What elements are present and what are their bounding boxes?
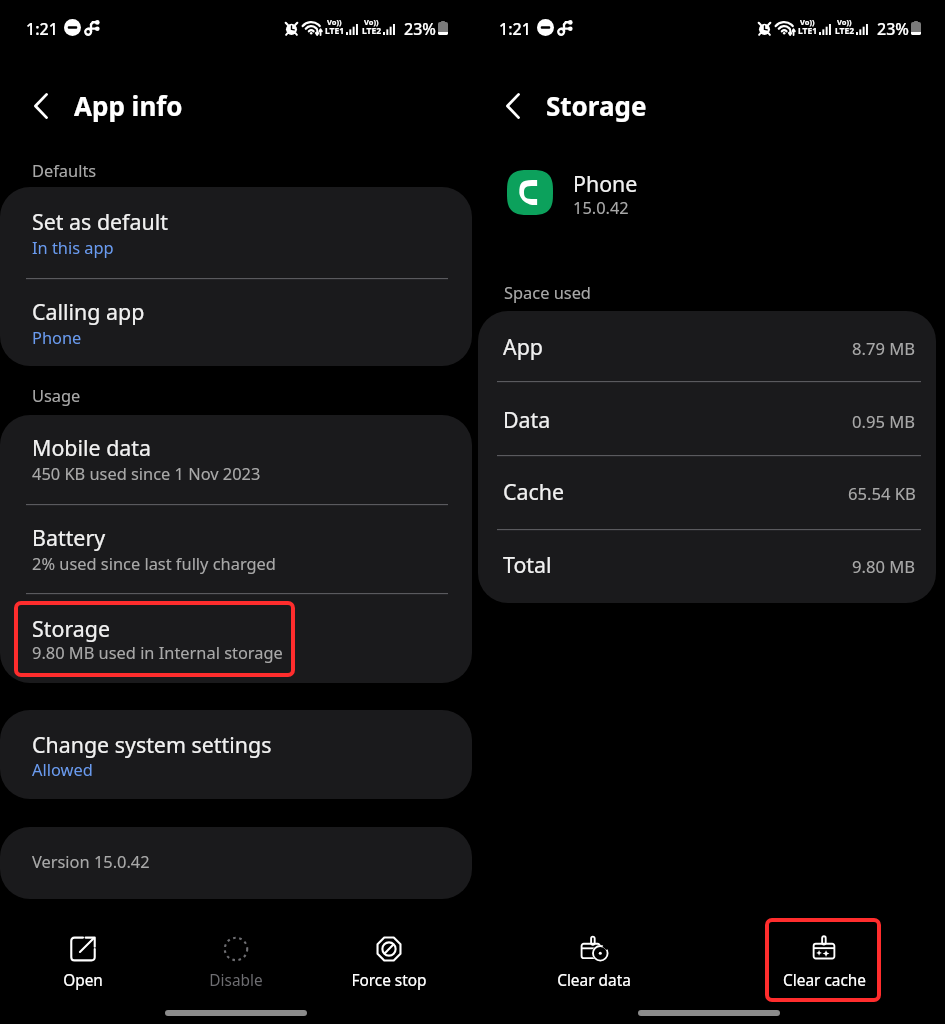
button[interactable]: Open — [8, 925, 158, 1001]
staticText: Vo)) — [364, 17, 379, 27]
button[interactable]: Navigate up — [489, 82, 537, 130]
staticText: Vo)) — [800, 17, 815, 27]
staticText: 1:21 — [26, 18, 58, 40]
button[interactable]: Battery — [0, 504, 472, 593]
button[interactable]: Change system settings — [0, 710, 472, 799]
staticText: Calling app — [32, 297, 145, 326]
staticText: Clear data — [557, 970, 631, 991]
staticText: 450 KB used since 1 Nov 2023 — [32, 462, 261, 484]
staticText: Force stop — [351, 970, 427, 991]
button[interactable]: Navigate up — [17, 82, 65, 130]
staticText: Cache — [503, 477, 565, 506]
staticText: Set as default — [32, 207, 168, 236]
staticText: 9.80 MB used in Internal storage — [32, 641, 283, 663]
button[interactable]: Clear cache — [749, 925, 899, 1001]
staticText: 0.95 MB — [852, 410, 916, 433]
button[interactable]: Data — [478, 382, 936, 455]
button[interactable]: App — [478, 311, 936, 382]
staticText: 23% — [404, 18, 436, 40]
staticText: Mobile data — [32, 433, 152, 462]
staticText: Battery — [32, 523, 106, 552]
staticText: Data — [503, 405, 551, 434]
staticText: LTE2 — [362, 25, 382, 37]
staticText: Defaults — [32, 159, 97, 181]
staticText: Phone — [573, 169, 638, 198]
button[interactable]: Mobile data — [0, 415, 472, 504]
staticText: App — [503, 332, 543, 361]
staticText: Usage — [32, 384, 81, 406]
staticText: Phone — [32, 326, 82, 348]
staticText: LTE2 — [835, 25, 855, 37]
staticText: Total — [503, 550, 552, 579]
staticText: Version 15.0.42 — [32, 850, 150, 872]
button[interactable]: Calling app — [0, 278, 472, 366]
staticText: Storage — [32, 614, 111, 643]
staticText: Storage — [546, 88, 647, 123]
staticText: Vo)) — [837, 17, 852, 27]
button[interactable]: Clear data — [519, 925, 669, 1001]
staticText: Open — [63, 970, 103, 991]
button[interactable]: Set as default — [0, 187, 472, 277]
button[interactable]: Total — [478, 529, 936, 603]
button[interactable]: Phone — [493, 160, 773, 226]
staticText: 15.0.42 — [573, 196, 629, 218]
staticText: Disable — [209, 970, 263, 991]
staticText: App info — [74, 88, 183, 123]
staticText: 8.79 MB — [852, 337, 916, 360]
staticText: In this app — [32, 236, 114, 258]
staticText: 2% used since last fully charged — [32, 552, 276, 574]
staticText: Allowed — [32, 758, 93, 780]
button[interactable]: Storage — [0, 593, 472, 683]
staticText: 23% — [877, 18, 909, 40]
staticText: LTE1 — [798, 25, 818, 37]
staticText: 65.54 KB — [848, 482, 916, 505]
staticText: Clear cache — [783, 970, 866, 991]
button[interactable]: Cache — [478, 455, 936, 529]
staticText: LTE1 — [325, 25, 345, 37]
staticText: 1:21 — [499, 18, 531, 40]
staticText: Space used — [504, 281, 591, 303]
button[interactable]: Disable — [161, 925, 311, 1001]
staticText: Vo)) — [327, 17, 342, 27]
button[interactable]: Force stop — [314, 925, 464, 1001]
staticText: 9.80 MB — [852, 555, 916, 578]
staticText: Change system settings — [32, 730, 272, 759]
